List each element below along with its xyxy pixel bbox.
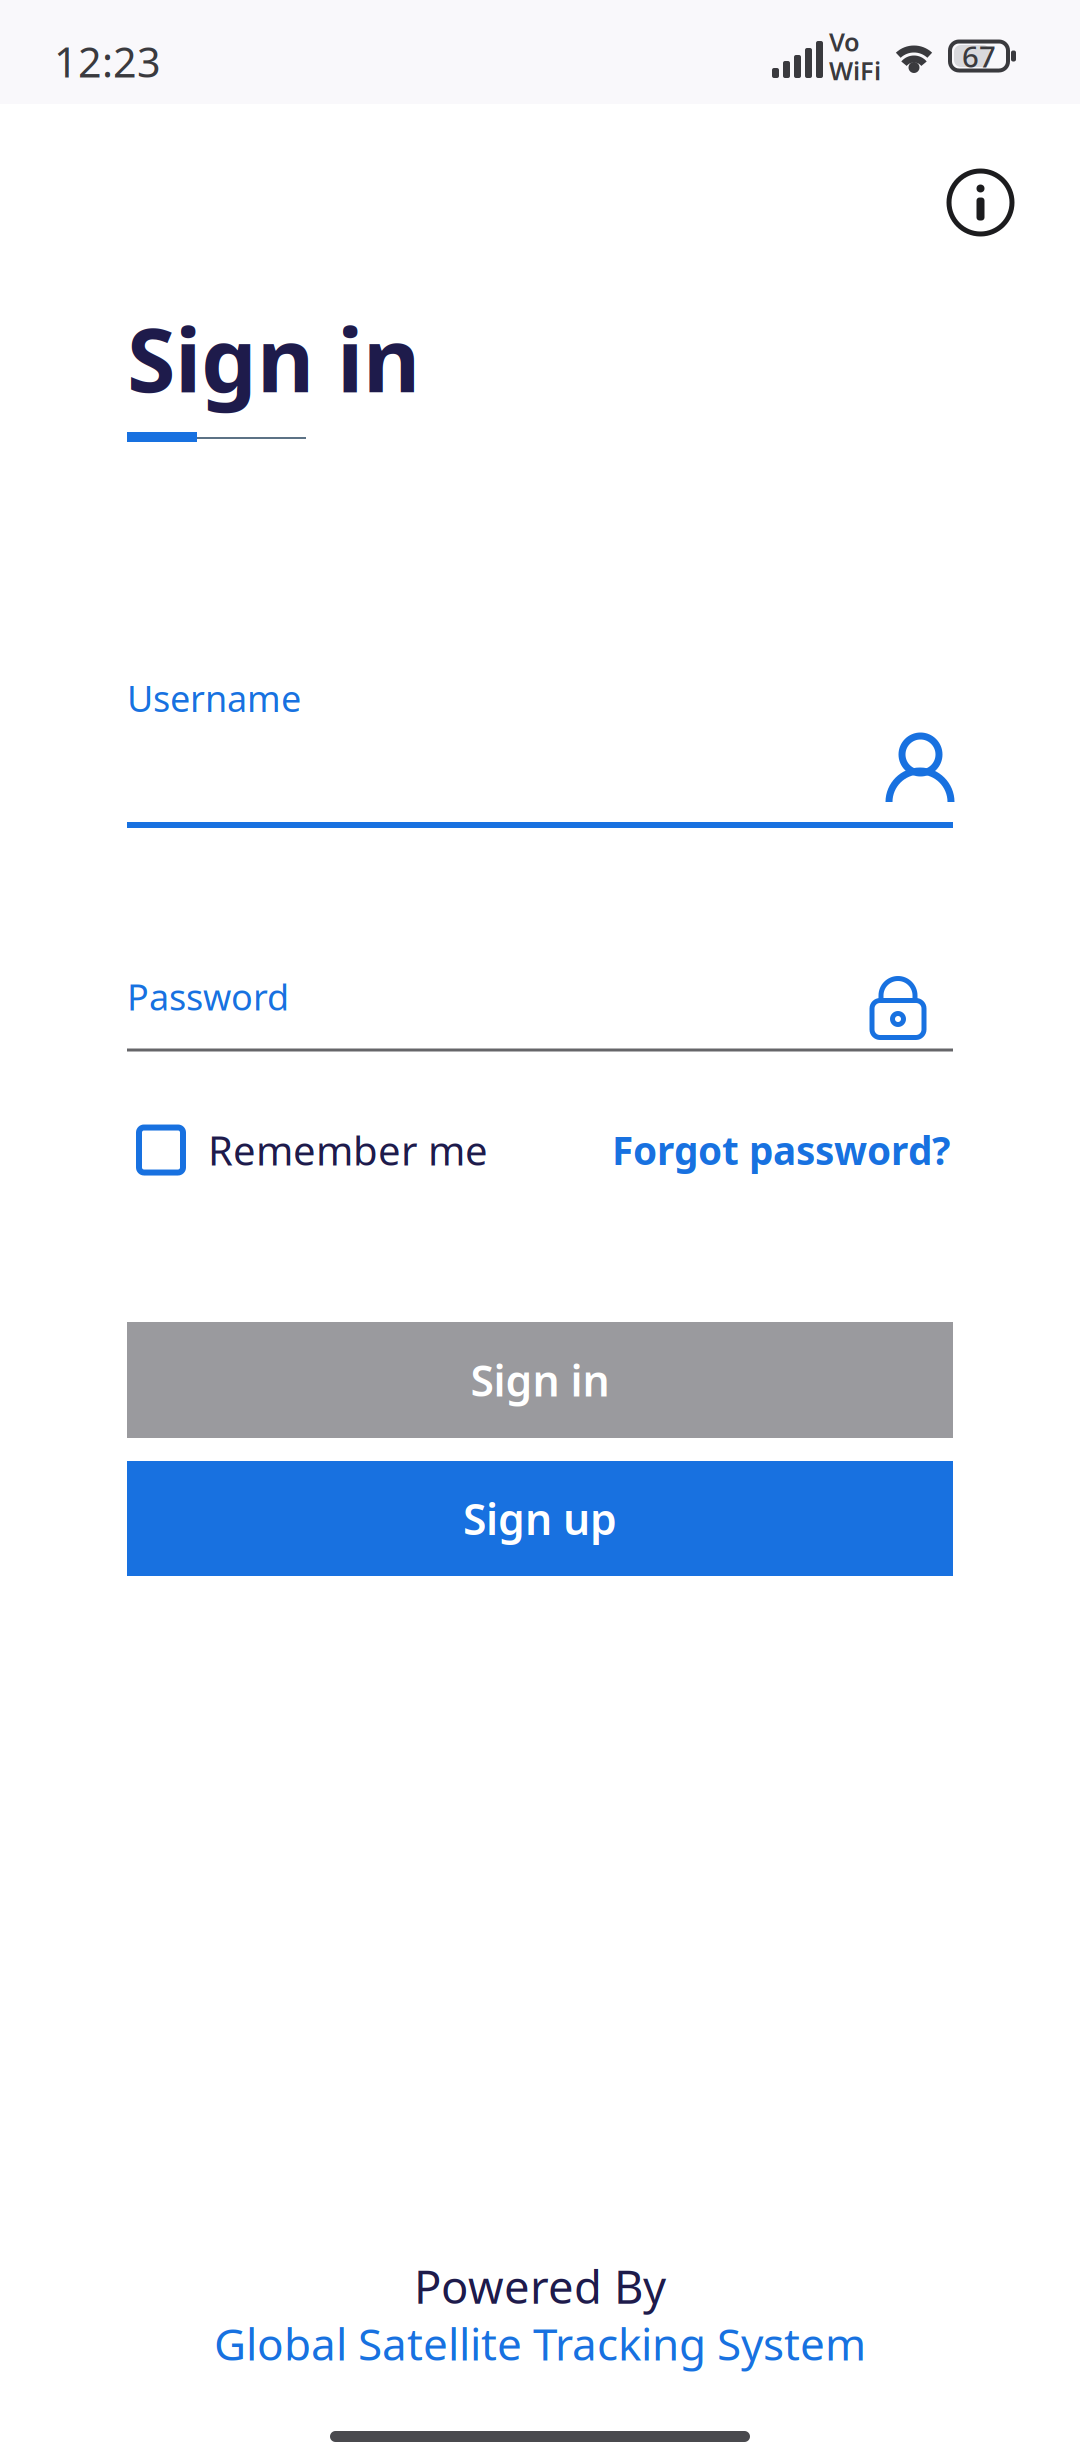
staticText: Sign in xyxy=(470,1352,609,1408)
staticText: Forgot password? xyxy=(612,1124,950,1176)
staticText: Password xyxy=(127,973,289,1020)
staticText: Remember me xyxy=(208,1123,488,1176)
button[interactable]: Remember me xyxy=(136,1120,488,1180)
staticText: 12:23 xyxy=(54,34,161,89)
button[interactable]: Forgot password? xyxy=(612,1120,992,1180)
staticText: Sign up xyxy=(463,1490,617,1547)
staticText: 67 xyxy=(962,36,996,75)
staticText: Username xyxy=(127,674,301,722)
staticText: Sign in xyxy=(127,300,420,416)
staticText: WiFi xyxy=(829,53,881,87)
button[interactable]: Sign up xyxy=(127,1461,953,1576)
button[interactable]: Password xyxy=(127,984,953,1057)
staticText: Vo xyxy=(829,25,860,58)
staticText: Powered By xyxy=(414,2256,666,2316)
button[interactable]: About this app xyxy=(927,149,1034,256)
button[interactable]: Username xyxy=(127,684,953,828)
staticText: Global Satellite Tracking System xyxy=(214,2314,866,2373)
button[interactable]: Sign in xyxy=(127,1322,953,1438)
